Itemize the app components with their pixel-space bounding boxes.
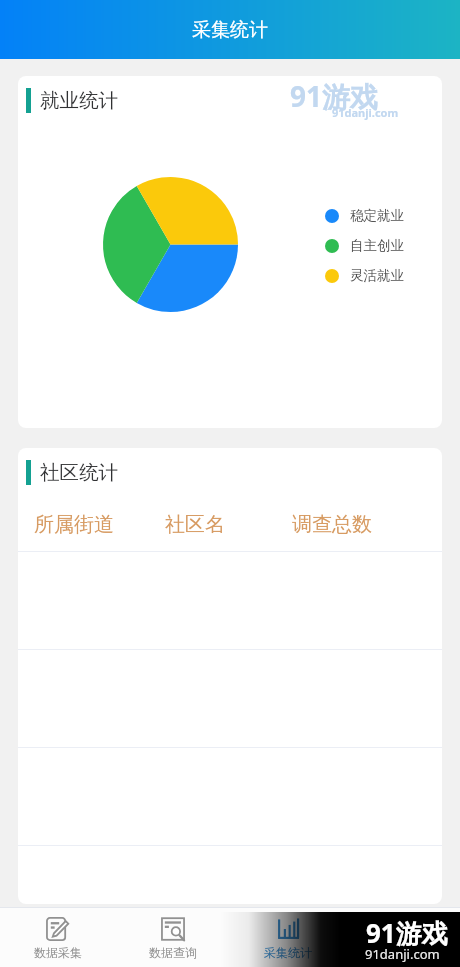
button[interactable]: 个人中心 [345,908,460,967]
staticText: 调查总数 [292,512,372,537]
staticText: 灵活就业 [350,267,404,284]
staticText: 91danji.com [332,105,399,120]
other: 个人中心 [391,917,415,941]
staticText: 采集统计 [264,945,312,960]
other: 数据采集 [46,917,70,941]
staticText: 社区名 [165,512,225,537]
staticText: 91游戏 [290,77,379,115]
other: 数据查询 [161,917,185,941]
button[interactable]: 采集统计 [230,908,345,967]
staticText: 数据查询 [149,945,197,960]
staticText: 稳定就业 [350,207,404,224]
button[interactable]: 数据查询 [115,908,230,967]
staticText: 数据采集 [34,945,82,960]
button[interactable]: 数据采集 [0,908,115,967]
staticText: 采集统计 [192,18,268,42]
other: 采集统计 [276,917,300,941]
staticText: 就业统计 [40,88,118,113]
staticText: 91游戏 [366,915,448,951]
staticText: 所属街道 [34,512,114,537]
staticText: 自主创业 [350,237,404,254]
staticText: 社区统计 [40,460,118,485]
staticText: 91danji.com [365,945,440,963]
staticText: 个人中心 [379,945,427,960]
